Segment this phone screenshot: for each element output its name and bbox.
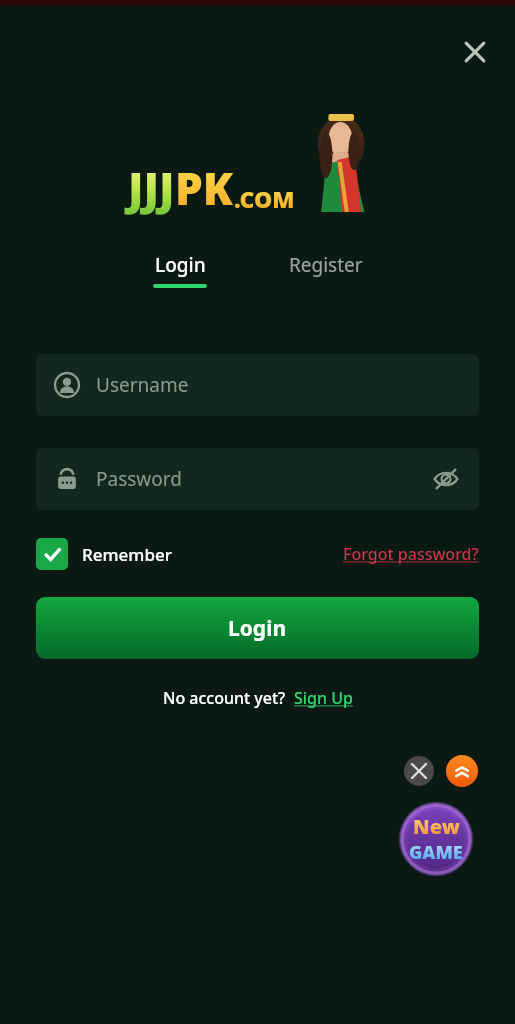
button[interactable]: Username [36,354,479,416]
button[interactable]: Forgot password? [343,543,479,565]
button[interactable]: Expand [446,755,478,787]
button[interactable]: Close [453,30,497,74]
button[interactable]: New Game [398,801,474,877]
button[interactable]: Show password [429,462,463,496]
button[interactable]: Sign Up [294,687,353,709]
staticText: PK [175,158,234,218]
staticText: Forgot password? [343,543,479,565]
staticText: GAME [409,840,463,865]
staticText: JJJ [128,158,175,218]
staticText: Password [96,466,182,492]
staticText: Login [155,252,206,278]
staticText: Remember [82,543,172,566]
staticText: Username [96,372,189,398]
button[interactable]: Password [36,448,479,510]
button[interactable]: Login [36,597,479,659]
staticText: New [413,813,460,840]
staticText: Sign Up [294,687,353,709]
staticText: No account yet? [163,687,286,709]
button[interactable]: Remember [36,538,172,570]
button[interactable]: Dismiss [404,756,434,786]
button[interactable]: Login [145,248,215,292]
staticText: Login [228,614,287,643]
staticText: .COM [234,183,295,214]
button[interactable]: Register [281,248,371,282]
staticText: Register [289,252,363,278]
